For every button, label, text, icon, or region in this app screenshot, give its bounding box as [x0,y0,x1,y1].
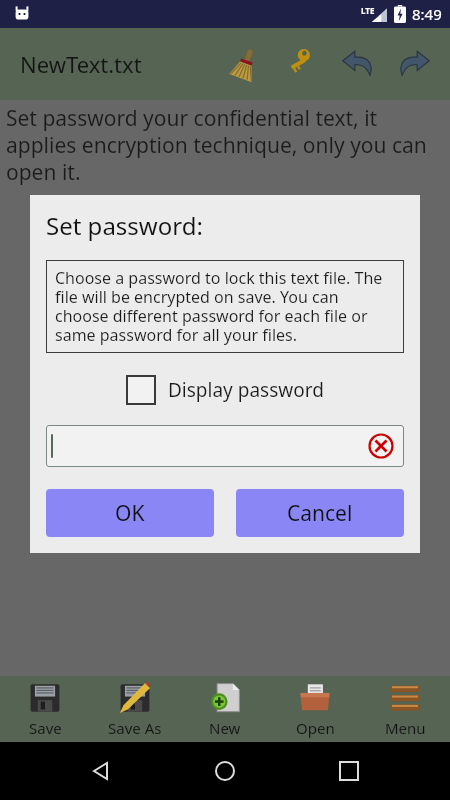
button[interactable]: Redo [386,36,442,92]
button[interactable]: Clear password [46,425,404,467]
button[interactable]: Save As [90,676,180,742]
button[interactable]: OK [46,489,214,537]
staticText: Save [29,718,62,738]
staticText: Menu [385,718,426,738]
staticText: 8:49 [412,4,442,24]
staticText: New [209,718,241,738]
button[interactable]: Clear password [368,433,394,459]
button[interactable]: New [180,676,270,742]
button[interactable]: Display password [46,375,404,405]
staticText: Choose a password to lock this text file… [55,267,395,346]
staticText: Set password your confidential text, it … [6,104,440,186]
button[interactable]: Recents [326,748,372,794]
button[interactable]: Cancel [236,489,404,537]
button[interactable]: Menu [360,676,450,742]
staticText: Cancel [287,499,353,528]
button[interactable]: Open [270,676,360,742]
staticText: Display password [168,377,324,403]
button[interactable]: Home [202,748,248,794]
staticText: Save As [108,718,162,738]
button[interactable]: Save [0,676,90,742]
staticText: OK [115,499,145,528]
staticText: NewText.txt [20,49,142,79]
button[interactable]: Back [78,748,124,794]
staticText: LTE [361,5,375,16]
button[interactable]: Set password [274,36,330,92]
button[interactable]: Clear [218,36,274,92]
staticText: Open [296,718,335,738]
button[interactable]: Undo [330,36,386,92]
staticText: Set password: [46,209,203,242]
